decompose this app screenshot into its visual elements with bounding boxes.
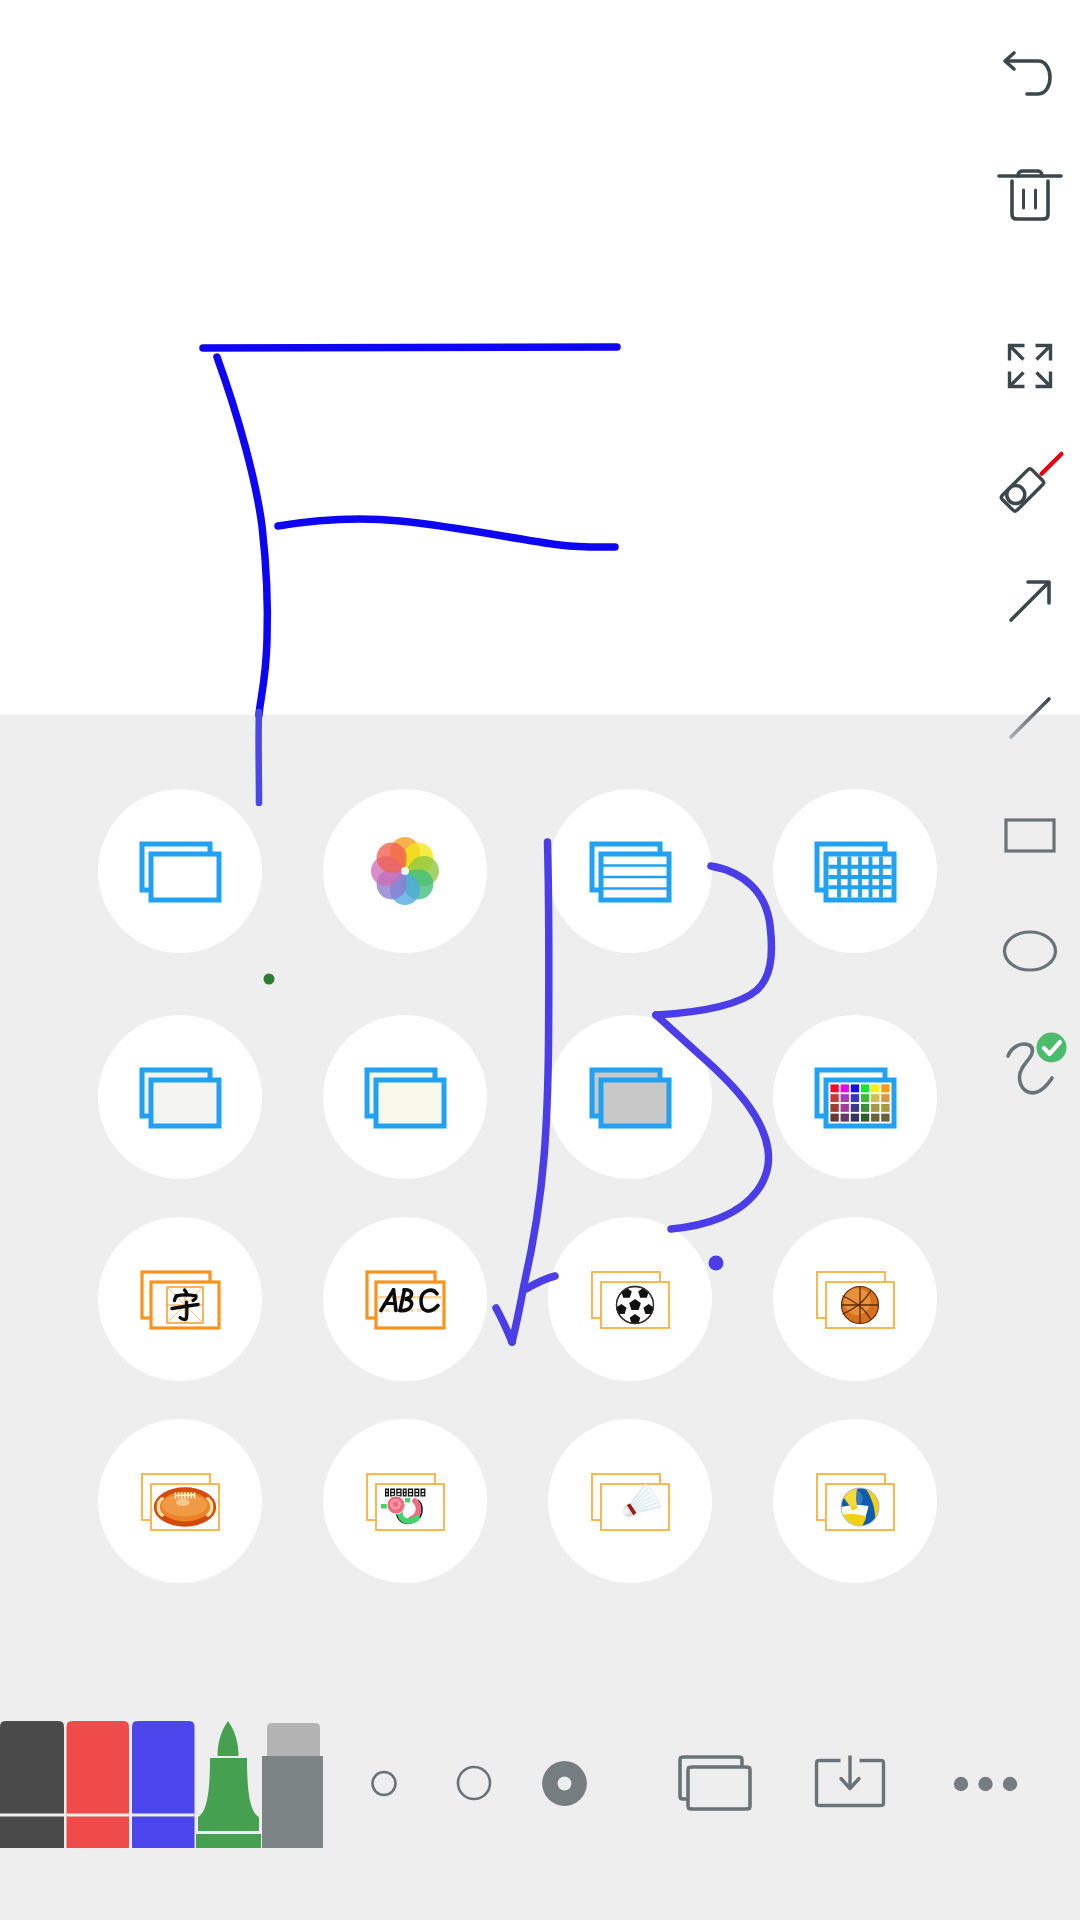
button[interactable]: Highlighter xyxy=(978,442,1080,542)
button[interactable]: Template 8 xyxy=(773,1015,937,1179)
button[interactable]: Template 11 xyxy=(548,1217,712,1381)
button[interactable]: Ellipse xyxy=(978,901,1080,1001)
button[interactable]: Template 1 xyxy=(98,789,262,953)
button[interactable]: Template 14 xyxy=(323,1419,487,1583)
button[interactable]: Template 9 xyxy=(98,1217,262,1381)
button[interactable]: Template 6 xyxy=(323,1015,487,1179)
button[interactable]: Delete xyxy=(978,144,1080,244)
button[interactable]: Undo xyxy=(978,24,1080,124)
button[interactable]: Pages xyxy=(676,1745,752,1821)
button[interactable]: Template 13 xyxy=(98,1419,262,1583)
button[interactable]: Template 15 xyxy=(548,1419,712,1583)
button[interactable]: Template 16 xyxy=(773,1419,937,1583)
button[interactable]: Expand xyxy=(978,316,1080,416)
button[interactable]: Template 7 xyxy=(548,1015,712,1179)
button[interactable]: Arrow xyxy=(978,551,1080,651)
button[interactable]: Template 4 xyxy=(773,789,937,953)
button[interactable]: Freehand xyxy=(978,1017,1080,1117)
button[interactable]: Template 5 xyxy=(98,1015,262,1179)
button[interactable]: Line xyxy=(978,668,1080,768)
button[interactable]: Save xyxy=(812,1745,888,1821)
button[interactable]: Black pen xyxy=(0,1715,64,1855)
button[interactable]: Template 12 xyxy=(773,1217,937,1381)
button[interactable]: Template 3 xyxy=(548,789,712,953)
button[interactable]: Thin stroke xyxy=(346,1746,422,1822)
button[interactable]: More options xyxy=(947,1746,1023,1822)
button[interactable]: Template 10 xyxy=(323,1217,487,1381)
button[interactable]: Blue pen xyxy=(131,1715,195,1855)
button[interactable]: Thick stroke xyxy=(526,1746,602,1822)
button[interactable]: Template 2 xyxy=(323,789,487,953)
button[interactable]: Rectangle xyxy=(978,785,1080,885)
button[interactable]: Highlighter xyxy=(197,1715,261,1855)
button[interactable]: Medium stroke xyxy=(436,1746,512,1822)
button[interactable]: Eraser xyxy=(262,1715,326,1855)
button[interactable]: Red pen xyxy=(66,1715,130,1855)
